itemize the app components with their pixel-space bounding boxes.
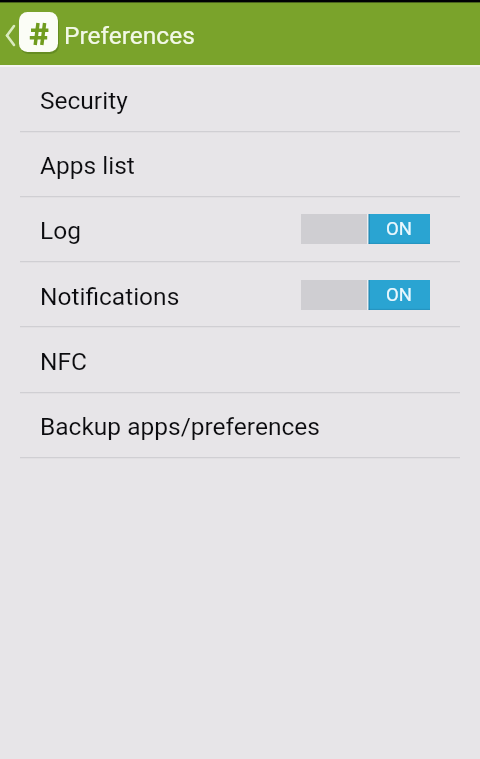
button[interactable]: NFC: [0, 327, 480, 392]
button[interactable]: Notifications: [0, 262, 480, 327]
button[interactable]: Apps list: [0, 131, 480, 196]
staticText: NFC: [40, 347, 87, 376]
button[interactable]: Back: [1, 9, 19, 57]
staticText: Backup apps/preferences: [40, 412, 320, 441]
button[interactable]: Security: [0, 66, 480, 131]
staticText: Log: [40, 216, 81, 245]
button[interactable]: Notifications switch, on: [301, 280, 430, 310]
staticText: ON: [386, 218, 412, 240]
staticText: Apps list: [40, 151, 135, 180]
button[interactable]: Log: [0, 196, 480, 261]
staticText: Notifications: [40, 282, 180, 311]
button[interactable]: Log switch, on: [301, 214, 430, 244]
staticText: Security: [40, 86, 128, 115]
staticText: ON: [386, 284, 412, 306]
staticText: Preferences: [64, 21, 195, 50]
button[interactable]: Backup apps/preferences: [0, 392, 480, 457]
